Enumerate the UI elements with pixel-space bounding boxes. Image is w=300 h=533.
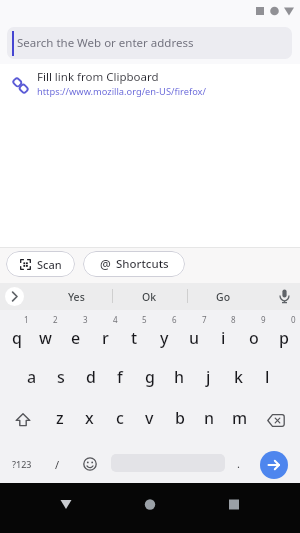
button[interactable]: h (165, 362, 194, 392)
button[interactable]: / (45, 452, 69, 476)
button[interactable] (83, 457, 97, 471)
button[interactable]: ?123 (2, 452, 42, 476)
staticText: Fill link from Clipboard (37, 69, 159, 85)
staticText: n (204, 407, 215, 429)
staticText: r (102, 327, 109, 349)
staticText: e (71, 327, 81, 349)
staticText: 7 (202, 314, 207, 325)
button[interactable] (0, 66, 240, 102)
button[interactable]: n (195, 403, 224, 433)
button[interactable]: @ (83, 251, 185, 277)
staticText: 5 (142, 314, 147, 325)
staticText: p (279, 327, 289, 349)
staticText: 3 (83, 314, 88, 325)
staticText: c (116, 407, 124, 429)
button[interactable] (130, 490, 170, 520)
staticText: j (206, 366, 211, 388)
button[interactable]: u (180, 323, 209, 353)
button[interactable]: s (46, 362, 75, 392)
button[interactable]: l (253, 362, 282, 392)
staticText: 4 (113, 314, 118, 325)
staticText: w (39, 327, 52, 349)
staticText: h (174, 366, 185, 388)
staticText: Go (216, 290, 231, 304)
staticText: d (86, 366, 96, 388)
staticText: q (12, 327, 22, 349)
staticText: g (145, 366, 155, 388)
staticText: 6 (172, 314, 177, 325)
button[interactable]: c (105, 403, 134, 433)
button[interactable]: b (165, 403, 194, 433)
staticText: 0 (291, 314, 296, 325)
staticText: a (27, 366, 37, 388)
staticText: Search the Web or enter address (17, 35, 194, 51)
button[interactable] (260, 451, 288, 479)
staticText: 1 (24, 314, 29, 325)
staticText: . (237, 456, 240, 471)
staticText: https://www.mozilla.org/en-US/firefox/ (37, 85, 206, 98)
button[interactable] (15, 413, 31, 427)
staticText: b (175, 407, 185, 429)
button[interactable]: Ok (124, 283, 174, 310)
button[interactable] (267, 414, 285, 427)
button[interactable]: Go (198, 283, 248, 310)
staticText: t (131, 327, 138, 349)
button[interactable]: f (105, 362, 134, 392)
button[interactable]: p (269, 323, 298, 353)
button[interactable]: x (75, 403, 104, 433)
button[interactable] (214, 490, 254, 520)
button[interactable]: e (61, 323, 90, 353)
staticText: 9 (261, 314, 266, 325)
button[interactable]: q (2, 323, 31, 353)
button[interactable]: w (31, 323, 60, 353)
staticText: Ok (142, 290, 157, 304)
button[interactable] (279, 289, 290, 304)
button[interactable]: y (150, 323, 179, 353)
button[interactable]: z (45, 403, 74, 433)
staticText: @ (100, 256, 111, 272)
staticText: u (189, 327, 200, 349)
button[interactable]: Yes (51, 283, 101, 310)
button[interactable]: v (135, 403, 164, 433)
button[interactable]: d (76, 362, 105, 392)
staticText: z (56, 407, 64, 429)
staticText: s (57, 366, 65, 388)
button[interactable]: g (135, 362, 164, 392)
staticText: Scan (37, 257, 62, 272)
staticText: / (55, 457, 60, 472)
button[interactable]: Search the Web or enter address (7, 27, 292, 59)
staticText: 2 (53, 314, 58, 325)
button[interactable] (5, 287, 24, 306)
staticText: x (85, 407, 94, 429)
staticText: m (232, 407, 248, 429)
button[interactable]: j (194, 362, 223, 392)
button[interactable]: Scan (6, 251, 75, 277)
button[interactable] (46, 490, 86, 520)
staticText: Shortcuts (116, 256, 169, 272)
staticText: y (160, 327, 169, 349)
button[interactable]: k (224, 362, 253, 392)
button[interactable]: a (17, 362, 46, 392)
staticText: Yes (68, 290, 85, 304)
staticText: 8 (231, 314, 236, 325)
staticText: ?123 (12, 458, 32, 470)
staticText: l (265, 366, 270, 388)
button[interactable]: t (120, 323, 149, 353)
button[interactable]: m (225, 403, 254, 433)
staticText: f (117, 366, 123, 388)
button[interactable]: . (228, 451, 248, 475)
button[interactable]: o (239, 323, 268, 353)
button[interactable]: i (209, 323, 238, 353)
staticText: o (249, 327, 259, 349)
staticText: k (234, 366, 243, 388)
staticText: v (145, 407, 154, 429)
staticText: i (221, 327, 226, 349)
button[interactable]: r (91, 323, 120, 353)
